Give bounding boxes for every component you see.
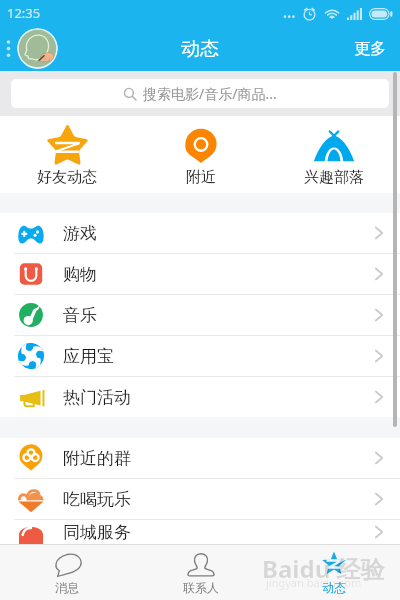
staticText: 同城服务 bbox=[63, 522, 131, 543]
button[interactable]: 搜索电影/音乐/商品... bbox=[11, 79, 389, 108]
button[interactable]: 动态 bbox=[267, 545, 400, 600]
staticText: 吃喝玩乐 bbox=[63, 489, 131, 510]
button[interactable]: 游戏 bbox=[0, 213, 400, 253]
button[interactable]: 同城服务 bbox=[0, 520, 400, 544]
staticText: 热门活动 bbox=[63, 387, 131, 408]
button[interactable]: 兴趣部落 bbox=[267, 116, 400, 193]
button[interactable]: Profile avatar bbox=[17, 28, 58, 69]
staticText: jingyan.baidu.com bbox=[266, 575, 362, 590]
staticText: 动态 bbox=[181, 37, 219, 61]
staticText: 联系人 bbox=[183, 580, 219, 595]
button[interactable]: 消息 bbox=[0, 545, 134, 600]
staticText: 消息 bbox=[55, 580, 79, 595]
staticText: 附近 bbox=[186, 168, 216, 187]
button[interactable]: 好友动态 bbox=[0, 116, 134, 193]
button[interactable]: 吃喝玩乐 bbox=[0, 479, 400, 519]
staticText: 购物 bbox=[63, 264, 97, 285]
staticText: 更多 bbox=[354, 39, 386, 59]
staticText: Baidu 经验 bbox=[262, 552, 385, 585]
button[interactable]: 热门活动 bbox=[0, 377, 400, 417]
staticText: 游戏 bbox=[63, 223, 97, 244]
button[interactable]: 附近的群 bbox=[0, 438, 400, 478]
staticText: 附近的群 bbox=[63, 448, 131, 469]
staticText: 兴趣部落 bbox=[304, 168, 364, 187]
button[interactable]: 联系人 bbox=[134, 545, 267, 600]
button[interactable]: 应用宝 bbox=[0, 336, 400, 376]
button[interactable]: 音乐 bbox=[0, 295, 400, 335]
staticText: 动态 bbox=[322, 580, 346, 595]
button[interactable]: 更多 bbox=[340, 26, 400, 71]
staticText: 12:35 bbox=[7, 4, 41, 22]
staticText: 应用宝 bbox=[63, 346, 114, 367]
staticText: 搜索电影/音乐/商品... bbox=[143, 84, 277, 103]
staticText: 好友动态 bbox=[37, 168, 97, 187]
button[interactable]: 购物 bbox=[0, 254, 400, 294]
staticText: 音乐 bbox=[63, 305, 97, 326]
button[interactable]: 附近 bbox=[134, 116, 267, 193]
